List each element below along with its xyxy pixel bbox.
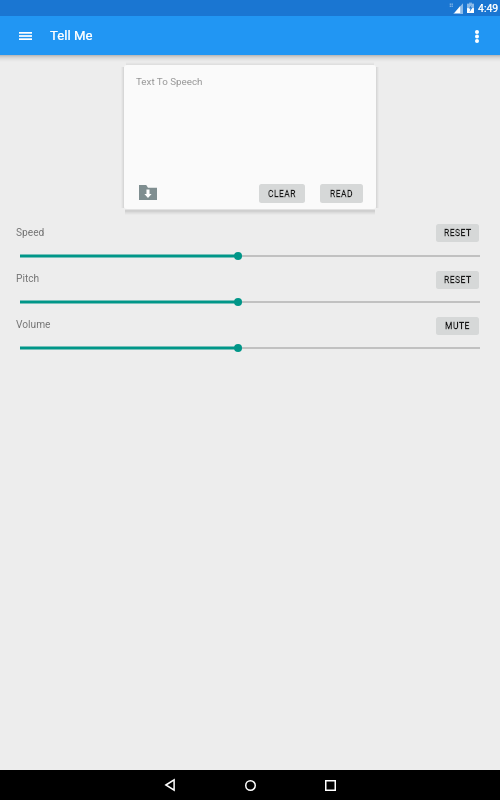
staticText: RESET	[444, 228, 472, 238]
button[interactable]: Back	[150, 765, 190, 800]
button[interactable]: CLEAR	[259, 184, 305, 203]
staticText: CLEAR	[268, 189, 296, 199]
staticText: Text To Speech	[136, 76, 203, 87]
button[interactable]: Recent apps	[310, 765, 350, 800]
staticText: Tell Me	[50, 28, 93, 43]
button[interactable]: Open navigation drawer	[11, 22, 39, 50]
button[interactable]: MUTE	[436, 317, 479, 335]
staticText: RESET	[444, 275, 472, 285]
staticText: Volume	[16, 319, 51, 331]
button[interactable]: More options	[463, 22, 491, 50]
button[interactable]: READ	[320, 184, 363, 203]
button[interactable]: RESET	[436, 224, 479, 242]
staticText: MUTE	[445, 321, 470, 331]
staticText: Pitch	[16, 273, 40, 285]
staticText: Speed	[16, 227, 45, 239]
staticText: 4:49	[478, 2, 499, 14]
button[interactable]: Open text file	[134, 178, 162, 206]
button[interactable]: RESET	[436, 271, 479, 289]
staticText: READ	[330, 189, 353, 199]
button[interactable]: Home	[230, 765, 270, 800]
